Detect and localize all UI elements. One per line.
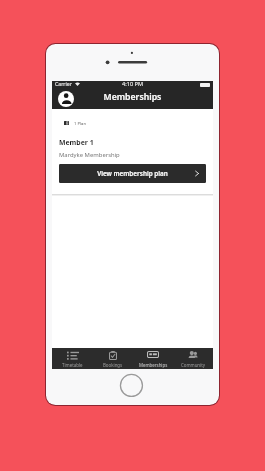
staticText: Timetable — [62, 362, 83, 368]
button[interactable]: Memberships — [133, 348, 173, 369]
button[interactable]: Account profile — [58, 91, 74, 107]
button[interactable]: View membership plan — [59, 164, 206, 183]
staticText: View membership plan — [59, 169, 206, 178]
staticText: 1 Plan — [74, 121, 87, 127]
button[interactable]: Timetable — [52, 348, 93, 369]
staticText: Bookings — [103, 362, 123, 368]
button[interactable]: Community — [173, 348, 213, 369]
staticText: Community — [181, 362, 206, 368]
button[interactable]: Bookings — [93, 348, 133, 369]
staticText: Memberships — [52, 91, 213, 103]
staticText: Mardyke Membership — [59, 151, 120, 159]
staticText: Carrier — [55, 80, 72, 87]
staticText: Member 1 — [59, 138, 94, 147]
staticText: Memberships — [139, 362, 168, 368]
staticText: 4:10 PM — [122, 80, 144, 88]
